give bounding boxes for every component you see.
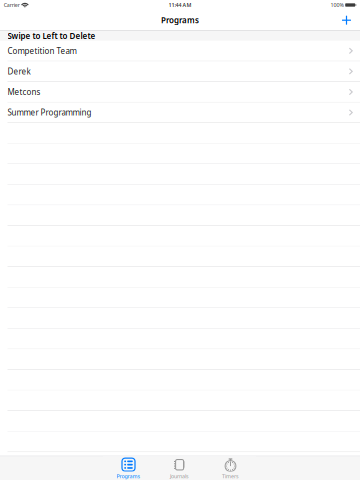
button[interactable]: Add — [333, 10, 360, 30]
staticText: Programs — [116, 473, 140, 480]
staticText: 11:44 AM — [168, 1, 191, 9]
button[interactable]: Summer Programming — [0, 102, 360, 123]
button[interactable]: Journals — [154, 456, 205, 480]
staticText: Competition Team — [7, 45, 76, 56]
staticText: Metcons — [7, 87, 40, 97]
button[interactable]: Competition Team — [0, 41, 360, 61]
staticText: Timers — [222, 473, 239, 480]
staticText: Journals — [170, 473, 189, 480]
staticText: 100% — [330, 1, 343, 9]
staticText: Swipe to Left to Delete — [7, 31, 95, 41]
staticText: Carrier — [4, 1, 20, 9]
button[interactable]: Timers — [205, 456, 256, 480]
button[interactable]: Metcons — [0, 82, 360, 102]
staticText: Derek — [7, 66, 30, 77]
button[interactable]: Derek — [0, 61, 360, 82]
staticText: Programs — [161, 15, 199, 25]
button[interactable]: Programs — [103, 456, 154, 480]
staticText: Summer Programming — [7, 107, 91, 118]
